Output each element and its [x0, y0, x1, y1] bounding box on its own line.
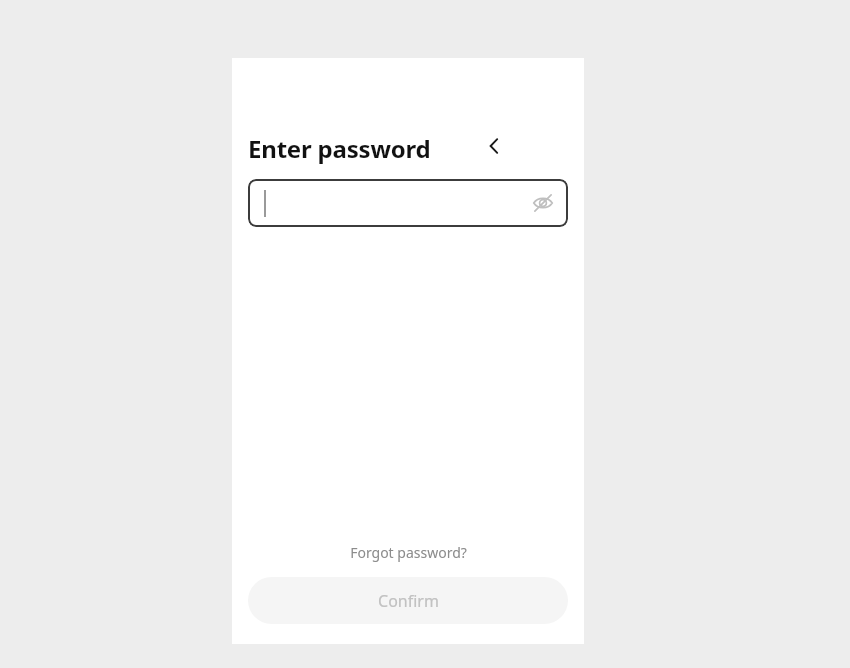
button[interactable]: Back [472, 124, 516, 168]
button[interactable]: Show password [248, 179, 568, 227]
staticText: Forgot password? [350, 543, 467, 562]
button[interactable]: Confirm [248, 577, 568, 624]
staticText: Enter password [248, 132, 431, 165]
button[interactable]: Show password [526, 186, 560, 220]
staticText: Confirm [378, 590, 439, 612]
button[interactable]: Forgot password? [340, 539, 477, 566]
